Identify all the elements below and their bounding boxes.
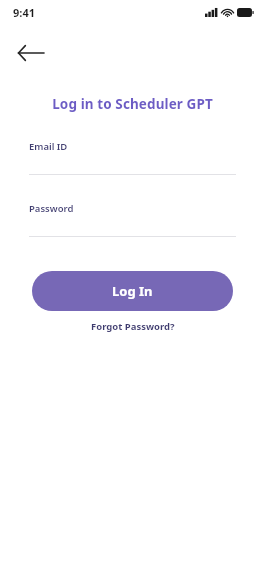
staticText: Forgot Password? bbox=[91, 320, 175, 333]
button[interactable]: Forgot Password? bbox=[83, 318, 183, 335]
staticText: Password bbox=[29, 202, 74, 215]
button[interactable]: Log In bbox=[32, 271, 233, 311]
staticText: Log in to Scheduler GPT bbox=[0, 95, 265, 113]
staticText: 9:41 bbox=[13, 5, 35, 20]
button[interactable]: Back bbox=[11, 33, 51, 73]
staticText: Email ID bbox=[29, 140, 68, 153]
staticText: Log In bbox=[112, 282, 153, 300]
